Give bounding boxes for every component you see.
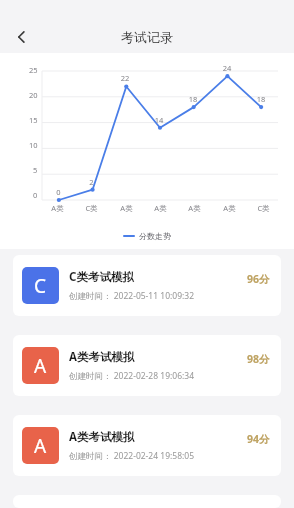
- staticText: C类: [85, 203, 98, 213]
- staticText: 0: [42, 187, 75, 197]
- button[interactable]: Back: [8, 23, 36, 51]
- staticText: 10: [29, 140, 38, 150]
- staticText: 分数走势: [139, 231, 171, 241]
- staticText: A类考试模拟: [69, 349, 135, 365]
- staticText: A类考试模拟: [69, 429, 135, 445]
- staticText: A: [34, 353, 47, 379]
- staticText: 5: [33, 165, 38, 175]
- staticText: 14: [142, 115, 176, 125]
- staticText: 96分: [247, 272, 270, 286]
- button[interactable]: A: [13, 335, 281, 396]
- staticText: 18: [176, 94, 210, 104]
- staticText: C类: [257, 203, 270, 213]
- staticText: A类: [188, 203, 201, 213]
- staticText: 25: [29, 65, 38, 75]
- staticText: 0: [33, 190, 38, 200]
- staticText: A: [34, 433, 47, 459]
- staticText: 94分: [247, 432, 270, 446]
- staticText: 2: [75, 177, 108, 187]
- staticText: 98分: [247, 352, 270, 366]
- button[interactable]: A: [13, 415, 281, 476]
- staticText: A类: [154, 203, 167, 213]
- staticText: A类: [223, 203, 236, 213]
- staticText: A类: [51, 203, 64, 213]
- staticText: A类: [120, 203, 133, 213]
- staticText: 18: [244, 94, 278, 104]
- staticText: 15: [29, 115, 38, 125]
- staticText: 20: [29, 90, 38, 100]
- button[interactable]: C: [13, 255, 281, 316]
- staticText: 创建时间： 2022-02-28 19:06:34: [69, 370, 195, 382]
- staticText: 创建时间： 2022-02-24 19:58:05: [69, 450, 195, 462]
- staticText: 22: [108, 73, 142, 83]
- staticText: 创建时间： 2022-05-11 10:09:32: [69, 290, 195, 302]
- staticText: C类考试模拟: [69, 269, 134, 285]
- staticText: C: [34, 273, 47, 299]
- staticText: 考试记录: [121, 29, 173, 45]
- staticText: 24: [210, 63, 244, 73]
